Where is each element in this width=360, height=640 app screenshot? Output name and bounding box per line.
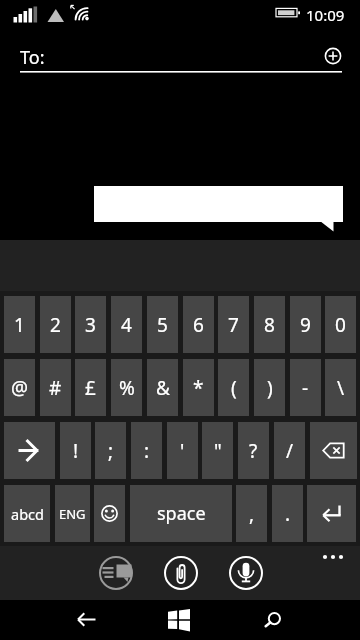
button[interactable]: 5 (147, 296, 178, 353)
staticText: . (285, 501, 291, 527)
staticText: £ (85, 375, 96, 401)
staticText: \ (337, 375, 345, 401)
staticText: 6 (193, 312, 204, 338)
button[interactable]: 3 (75, 296, 106, 353)
button[interactable]: . (272, 485, 303, 542)
button[interactable]: 9 (290, 296, 321, 353)
button[interactable] (164, 556, 198, 590)
button[interactable]: @ (4, 359, 35, 416)
staticText: : (144, 438, 150, 464)
staticText: 7 (228, 312, 239, 338)
button[interactable]: - (290, 359, 321, 416)
button[interactable] (310, 422, 357, 479)
button[interactable] (307, 485, 356, 542)
staticText: " (214, 438, 222, 464)
staticText: % (119, 375, 135, 401)
staticText: 5 (157, 312, 168, 338)
button[interactable]: % (111, 359, 142, 416)
button[interactable]: ) (254, 359, 285, 416)
staticText: ? (249, 438, 258, 464)
button[interactable] (4, 422, 55, 479)
staticText: ENG (59, 505, 86, 523)
staticText: ' (180, 438, 185, 464)
staticText: - (302, 375, 309, 401)
button[interactable] (229, 556, 263, 590)
staticText: # (49, 375, 62, 401)
button[interactable]: , (236, 485, 267, 542)
staticText: ; (108, 438, 114, 464)
button[interactable] (66, 602, 104, 638)
staticText: 3 (85, 312, 96, 338)
button[interactable]: 2 (40, 296, 71, 353)
button[interactable]: ( (218, 359, 249, 416)
button[interactable]: # (40, 359, 71, 416)
button[interactable] (99, 556, 133, 590)
staticText: 1 (14, 312, 25, 338)
button[interactable] (321, 44, 345, 68)
button[interactable]: 7 (218, 296, 249, 353)
button[interactable]: \ (325, 359, 356, 416)
button[interactable]: 0 (325, 296, 356, 353)
staticText: 2 (50, 312, 61, 338)
staticText: 4 (121, 312, 132, 338)
button[interactable]: " (202, 422, 233, 479)
button[interactable]: 1 (4, 296, 35, 353)
button[interactable] (161, 602, 199, 638)
staticText: , (249, 501, 255, 527)
button[interactable]: ; (95, 422, 126, 479)
staticText: abcd (11, 504, 44, 524)
button[interactable] (94, 485, 125, 542)
staticText: * (193, 375, 204, 401)
staticText: To: (20, 45, 45, 70)
staticText: / (286, 438, 294, 464)
button[interactable]: 4 (111, 296, 142, 353)
button[interactable]: * (183, 359, 214, 416)
button[interactable]: £ (75, 359, 106, 416)
button[interactable]: ' (167, 422, 198, 479)
button[interactable]: 6 (183, 296, 214, 353)
staticText: 8 (264, 312, 275, 338)
button[interactable] (256, 602, 294, 638)
staticText: 0 (335, 312, 346, 338)
button[interactable]: / (274, 422, 305, 479)
staticText: & (156, 375, 170, 401)
staticText: space (157, 501, 206, 526)
button[interactable]: & (147, 359, 178, 416)
button[interactable]: ? (238, 422, 269, 479)
button[interactable]: : (131, 422, 162, 479)
button[interactable]: ! (60, 422, 91, 479)
staticText: ) (267, 375, 273, 401)
staticText: 9 (300, 312, 311, 338)
button[interactable]: abcd (4, 485, 50, 542)
button[interactable]: space (130, 485, 232, 542)
button[interactable]: ENG (55, 485, 90, 542)
button[interactable]: 8 (254, 296, 285, 353)
staticText: @ (11, 375, 29, 401)
staticText: ! (73, 438, 79, 464)
staticText: 10:09 (306, 5, 345, 25)
staticText: ( (231, 375, 237, 401)
button[interactable] (316, 548, 348, 566)
